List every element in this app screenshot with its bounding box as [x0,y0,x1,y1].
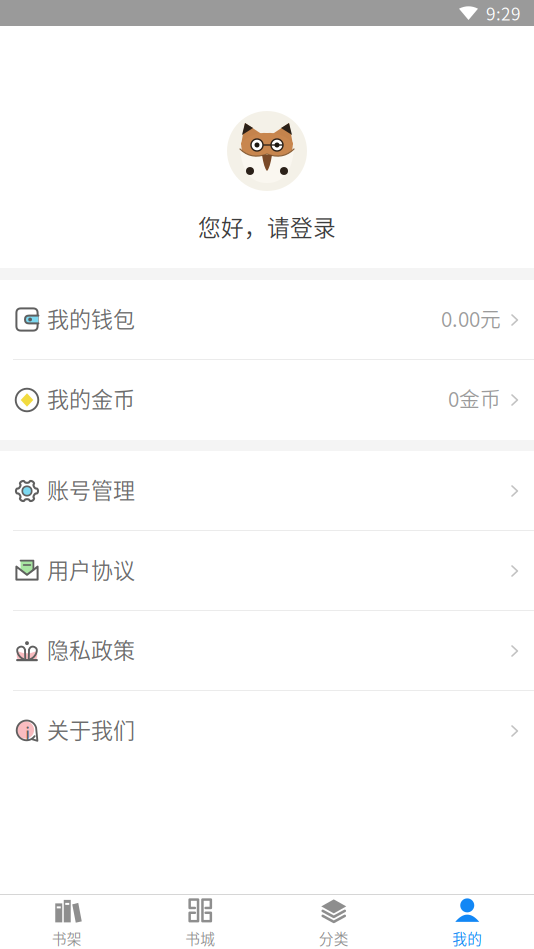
button[interactable]: 书架 [0,895,133,949]
staticText: 隐私政策 [47,633,135,665]
button[interactable]: 分类 [267,895,400,949]
staticText: 9:29 [486,0,521,26]
button[interactable]: 我的钱包 [0,280,534,360]
button[interactable]: 我的金币 [0,360,534,440]
button[interactable]: i [0,691,534,771]
staticText: 书城 [185,927,215,949]
staticText: 0.00元 [441,303,501,333]
button[interactable]: 账号管理 [0,451,534,531]
staticText: 用户协议 [47,553,135,585]
button[interactable]: 书城 [133,895,267,949]
staticText: 分类 [319,927,349,949]
staticText: 我的 [452,927,482,949]
staticText: 0金币 [448,383,501,413]
staticText: 关于我们 [47,713,135,745]
button[interactable]: 隐私政策 [0,611,534,691]
staticText: 书架 [52,927,82,949]
staticText: i [25,722,30,745]
staticText: 您好，请登录 [198,210,336,243]
button[interactable]: 用户协议 [0,531,534,611]
staticText: 账号管理 [47,473,135,505]
staticText: 我的钱包 [47,302,135,334]
staticText: 我的金币 [47,382,135,414]
button[interactable]: 我的 [400,895,534,949]
